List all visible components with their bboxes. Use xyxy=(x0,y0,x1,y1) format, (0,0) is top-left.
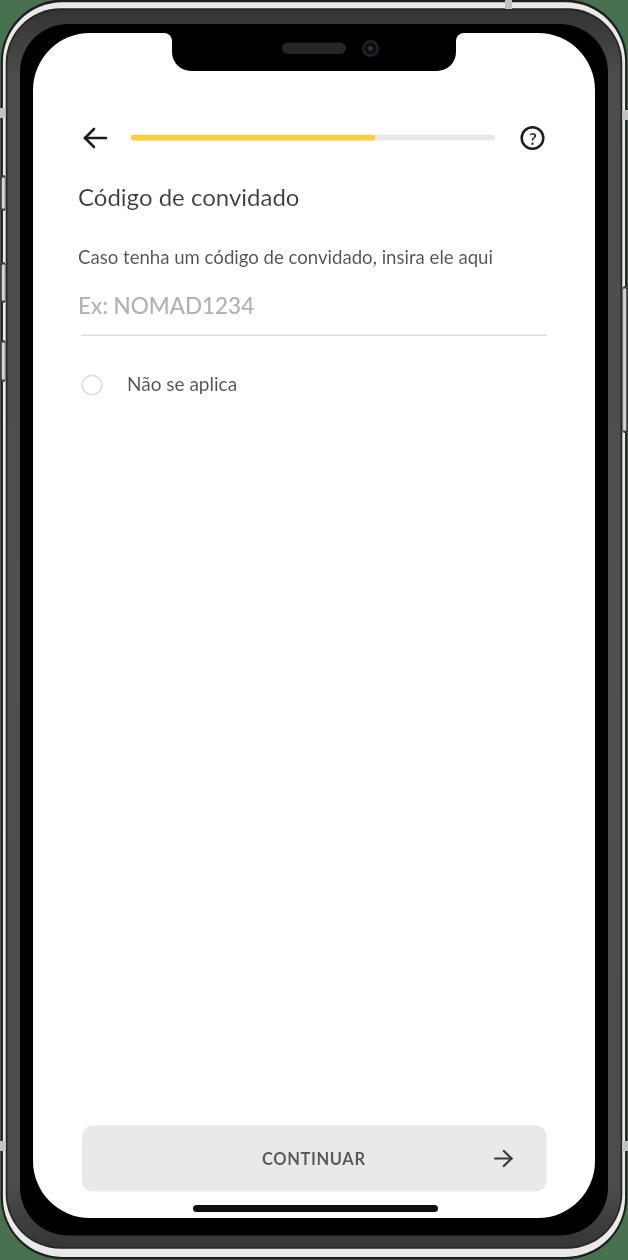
staticText: Caso tenha um código de convidado, insir… xyxy=(78,246,493,268)
staticText: Código de convidado xyxy=(78,182,300,211)
staticText: CONTINUAR xyxy=(262,1149,366,1169)
staticText: ? xyxy=(529,128,537,148)
staticText: Ex: NOMAD1234 xyxy=(78,292,255,319)
staticText: Não se aplica xyxy=(127,372,238,395)
